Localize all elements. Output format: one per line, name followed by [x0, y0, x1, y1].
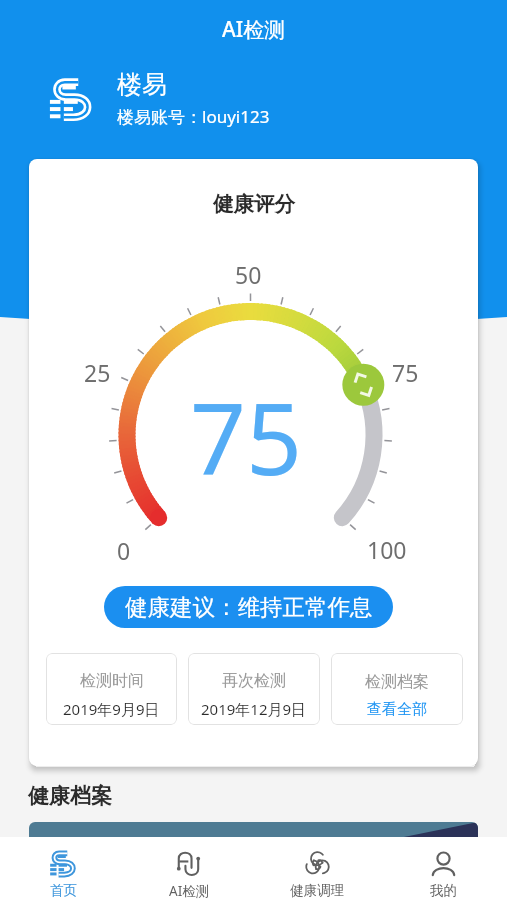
staticText: AI检测	[222, 15, 286, 44]
staticText: 楼易	[117, 69, 167, 100]
staticText: 0	[117, 535, 131, 565]
button[interactable]: 我的	[380, 837, 507, 900]
staticText: 健康档案	[28, 783, 112, 809]
button[interactable]: AI检测	[126, 837, 253, 900]
button[interactable]: 检测时间	[46, 653, 177, 725]
staticText: 首页	[50, 882, 77, 899]
staticText: 50	[235, 259, 262, 289]
staticText: 检测时间	[80, 671, 144, 691]
button[interactable]: 再次检测	[188, 653, 320, 725]
staticText: 健康调理	[290, 882, 344, 899]
staticText: 我的	[430, 882, 457, 899]
button[interactable]: 健康建议：维持正常作息	[104, 586, 393, 628]
staticText: AI检测	[169, 882, 210, 900]
staticText: 2019年9月9日	[63, 699, 160, 719]
staticText: 健康建议：维持正常作息	[125, 593, 373, 621]
staticText: 75	[392, 357, 419, 387]
button[interactable]: 首页	[0, 837, 126, 900]
staticText: 检测档案	[365, 672, 429, 692]
staticText: 楼易账号：louyi123	[117, 105, 270, 128]
staticText: 25	[84, 357, 111, 387]
button[interactable]: 检测档案	[331, 653, 463, 725]
staticText: 100	[367, 534, 407, 564]
staticText: 2019年12月9日	[201, 699, 307, 719]
button[interactable]: 健康调理	[253, 837, 380, 900]
staticText: 再次检测	[222, 671, 286, 691]
staticText: 查看全部	[367, 700, 427, 719]
staticText: 75	[190, 370, 303, 490]
staticText: 健康评分	[213, 191, 295, 217]
